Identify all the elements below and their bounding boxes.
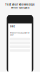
staticText: With Quizzes	[11, 6, 29, 9]
staticText: Which of these is a SwiftUI view?	[10, 32, 29, 36]
staticText: Quiz	[10, 25, 15, 28]
staticText: Test your knowledge	[5, 3, 35, 6]
